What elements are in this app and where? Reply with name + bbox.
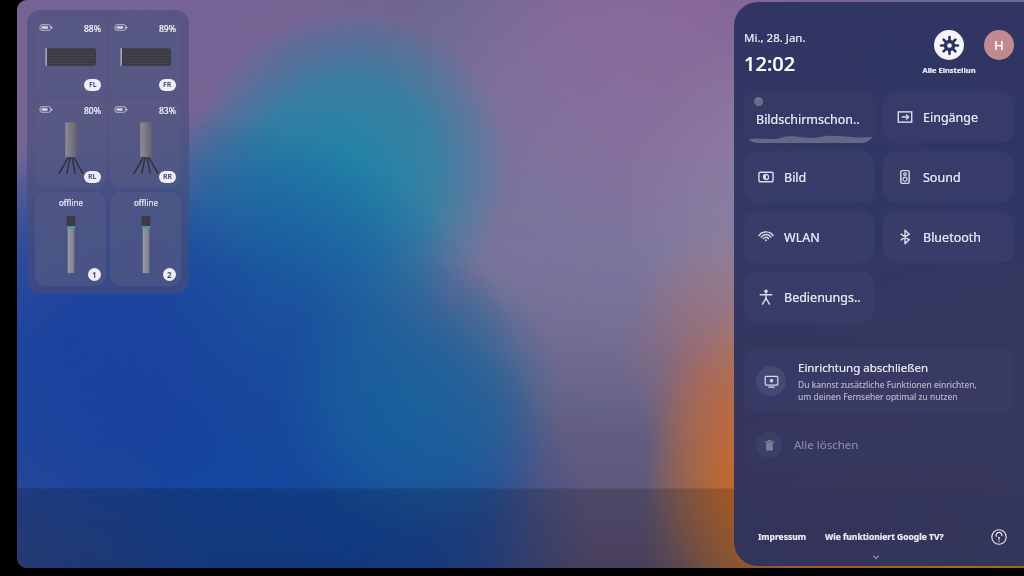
staticText: offline: [59, 197, 83, 208]
staticText: um deinen Fernseher optimal zu nutzen: [798, 391, 958, 403]
staticText: Eingänge: [923, 109, 979, 126]
button[interactable]: Profil H: [984, 30, 1014, 60]
button[interactable]: Bedienungs..: [744, 271, 875, 323]
staticText: Bild: [784, 169, 807, 186]
button[interactable]: Hilfe: [990, 528, 1008, 546]
button[interactable]: Bild: [744, 151, 875, 203]
button[interactable]: Alle Einstellungen: [934, 30, 964, 60]
staticText: Du kannst zusätzliche Funktionen einrich…: [798, 379, 977, 391]
button[interactable]: offline: [35, 192, 106, 286]
button[interactable]: Wie funktioniert Google TV?: [825, 531, 944, 543]
button[interactable]: Bildschirmschon..: [744, 91, 875, 143]
staticText: 83%: [159, 105, 176, 117]
button[interactable]: Bluetooth: [883, 211, 1014, 263]
button[interactable]: 88%: [35, 18, 106, 96]
button[interactable]: 80%: [35, 100, 106, 188]
staticText: 12:02: [744, 50, 796, 77]
staticText: Bildschirmschon..: [756, 111, 860, 128]
button[interactable]: Einrichtung abschließen: [744, 349, 1014, 413]
staticText: WLAN: [784, 229, 820, 246]
staticText: 89%: [159, 23, 176, 35]
button[interactable]: WLAN: [744, 211, 875, 263]
staticText: 2: [167, 269, 172, 280]
staticText: 80%: [84, 105, 101, 117]
staticText: Alle löschen: [794, 437, 859, 453]
button[interactable]: Eingänge: [883, 91, 1014, 143]
staticText: 1: [92, 269, 97, 280]
staticText: Einrichtung abschließen: [798, 360, 929, 376]
staticText: offline: [134, 197, 158, 208]
button[interactable]: 83%: [110, 100, 181, 188]
staticText: FL: [89, 80, 97, 90]
staticText: RR: [163, 172, 173, 182]
staticText: Alle Einstellun: [922, 65, 976, 75]
staticText: Bedienungs..: [784, 289, 861, 306]
button[interactable]: Alle löschen: [744, 423, 1014, 467]
button[interactable]: 89%: [110, 18, 181, 96]
button[interactable]: Sound: [883, 151, 1014, 203]
button[interactable]: Mehr anzeigen: [869, 552, 889, 562]
button[interactable]: Impressum: [758, 531, 807, 543]
staticText: Sound: [923, 169, 961, 186]
staticText: FR: [163, 80, 172, 90]
staticText: RL: [88, 172, 97, 182]
staticText: Bluetooth: [923, 229, 982, 246]
button[interactable]: offline: [110, 192, 181, 286]
staticText: Mi., 28. Jan.: [744, 30, 806, 46]
staticText: 88%: [84, 23, 101, 35]
staticText: H: [994, 36, 1004, 54]
